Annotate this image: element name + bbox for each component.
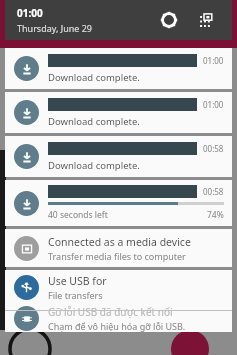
button[interactable]: 01:00 <box>5 48 232 89</box>
staticText: 00:58 <box>203 186 224 197</box>
staticText: 01:00 <box>203 99 224 110</box>
button[interactable]: Use USB for <box>5 270 232 304</box>
staticText: Download complete. <box>48 115 140 128</box>
staticText: Thursday, June 29 <box>17 22 93 34</box>
staticText: Chạm để vô hiệu hóa gỡ lỗi USB. <box>48 320 186 332</box>
button[interactable]: Connected as a media device <box>5 229 232 267</box>
staticText: Transfer media files to computer <box>48 250 186 262</box>
staticText: 74% <box>207 209 224 221</box>
staticText: Connected as a media device <box>48 235 191 249</box>
button[interactable]: 00:58 <box>5 180 232 226</box>
staticText: Use USB for <box>48 274 107 288</box>
button[interactable]: Gỡ lỗi USB đã được kết nối <box>5 304 232 332</box>
button[interactable]: 01:00 <box>5 92 232 133</box>
staticText: 01:00 <box>203 55 224 66</box>
staticText: Gỡ lỗi USB đã được kết nối <box>48 305 173 319</box>
button[interactable]: Quick settings <box>192 7 218 33</box>
staticText: Download complete. <box>48 71 140 84</box>
staticText: 01:00 <box>17 6 43 20</box>
staticText: File transfers <box>48 289 103 301</box>
staticText: 00:58 <box>203 143 224 154</box>
staticText: Download complete. <box>48 159 140 172</box>
button[interactable]: Settings <box>156 7 182 33</box>
staticText: 40 seconds left <box>48 209 108 221</box>
button[interactable]: 00:58 <box>5 136 232 177</box>
